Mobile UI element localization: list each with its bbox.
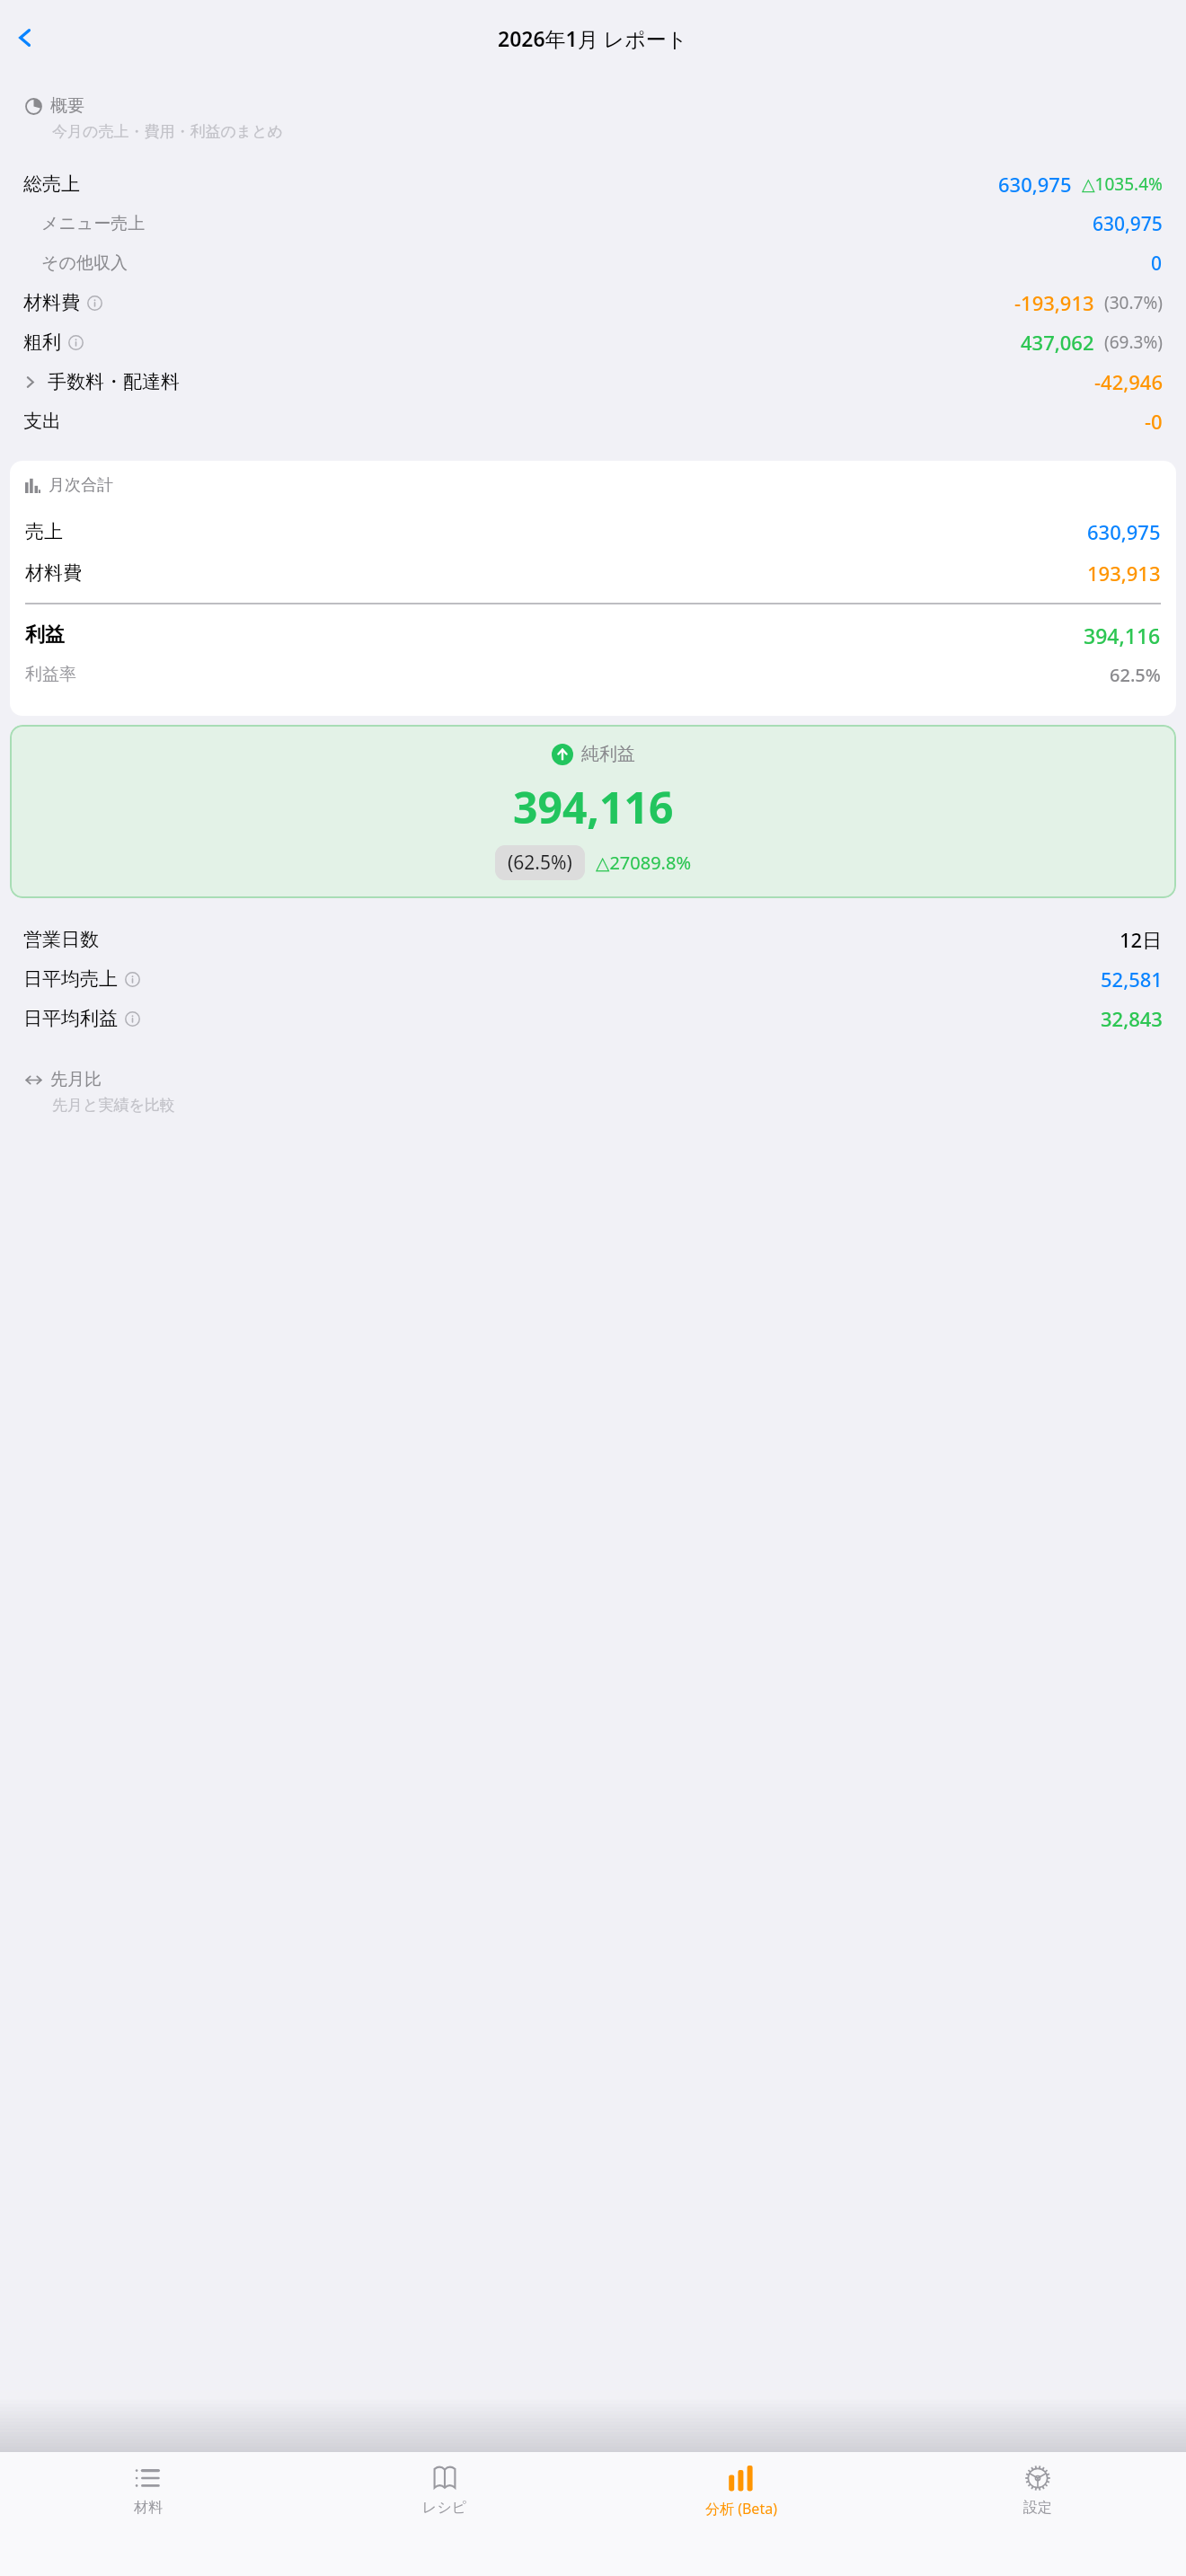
- button[interactable]: 支出: [0, 401, 1186, 441]
- staticText: △1035.4%: [1082, 172, 1163, 196]
- staticText: 437,062: [1021, 329, 1094, 356]
- button[interactable]: 材料費: [0, 283, 1186, 322]
- staticText: 月次合計: [49, 475, 113, 496]
- staticText: 営業日数: [23, 928, 99, 951]
- button[interactable]: メニュー売上: [0, 204, 1186, 243]
- button[interactable]: 分析 (Beta): [593, 2452, 889, 2519]
- staticText: 純利益: [581, 743, 635, 765]
- staticText: 193,913: [1087, 560, 1161, 587]
- staticText: △27089.8%: [596, 851, 692, 875]
- staticText: 利益率: [25, 664, 76, 685]
- staticText: 分析 (Beta): [705, 2499, 777, 2519]
- staticText: 32,843: [1101, 1005, 1163, 1032]
- staticText: 売上: [25, 520, 63, 543]
- button[interactable]: 手数料・配達料: [0, 362, 1186, 401]
- staticText: 概要: [50, 95, 84, 117]
- button[interactable]: 粗利: [0, 322, 1186, 362]
- staticText: 12日: [1120, 926, 1163, 953]
- staticText: 62.5%: [1110, 663, 1161, 687]
- staticText: 利益: [25, 622, 65, 648]
- staticText: 394,116: [513, 778, 674, 836]
- staticText: 日平均売上: [23, 967, 118, 991]
- staticText: (62.5%): [508, 850, 572, 876]
- staticText: 今月の売上・費用・利益のまとめ: [52, 122, 283, 141]
- staticText: -42,946: [1094, 368, 1163, 395]
- staticText: -193,913: [1014, 289, 1094, 316]
- staticText: 粗利: [23, 331, 61, 354]
- staticText: 支出: [23, 410, 61, 433]
- staticText: 先月と実績を比較: [52, 1096, 175, 1115]
- staticText: 394,116: [1084, 622, 1161, 649]
- button[interactable]: その他収入: [0, 243, 1186, 283]
- staticText: 日平均利益: [23, 1007, 118, 1030]
- staticText: 630,975: [1087, 518, 1161, 545]
- staticText: 52,581: [1101, 966, 1163, 992]
- staticText: 材料: [134, 2499, 163, 2517]
- staticText: 0: [1151, 251, 1163, 277]
- staticText: (69.3%): [1104, 331, 1163, 354]
- staticText: 2026年1月 レポート: [498, 24, 688, 52]
- staticText: 630,975: [1093, 211, 1163, 237]
- button[interactable]: 材料: [0, 2452, 296, 2517]
- button[interactable]: 総売上: [0, 164, 1186, 204]
- staticText: (30.7%): [1104, 291, 1163, 314]
- button[interactable]: 日平均売上: [0, 959, 1186, 999]
- staticText: 設定: [1023, 2499, 1052, 2517]
- button[interactable]: 先月比: [25, 1069, 1186, 1090]
- button[interactable]: 営業日数: [0, 920, 1186, 959]
- staticText: 材料費: [23, 291, 80, 314]
- staticText: その他収入: [41, 252, 128, 274]
- button[interactable]: 概要: [25, 95, 1186, 117]
- staticText: -0: [1145, 408, 1163, 435]
- staticText: 630,975: [998, 171, 1072, 198]
- button[interactable]: 月次合計: [10, 461, 1176, 716]
- staticText: 先月比: [50, 1069, 102, 1090]
- staticText: 総売上: [23, 172, 80, 196]
- staticText: レシピ: [422, 2499, 467, 2517]
- button[interactable]: 日平均利益: [0, 999, 1186, 1038]
- staticText: 手数料・配達料: [48, 370, 180, 393]
- staticText: メニュー売上: [41, 213, 146, 234]
- button[interactable]: 純利益: [10, 725, 1176, 898]
- staticText: 材料費: [25, 561, 82, 585]
- button[interactable]: 設定: [889, 2452, 1186, 2517]
- button[interactable]: 戻る: [5, 18, 45, 57]
- button[interactable]: レシピ: [296, 2452, 593, 2517]
